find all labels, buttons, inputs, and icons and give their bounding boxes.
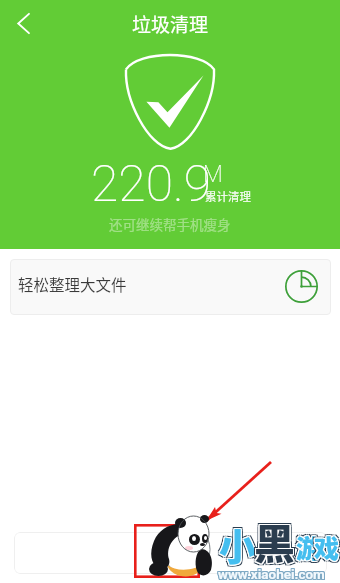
staticText: 游 — [295, 529, 321, 565]
staticText: 小 — [217, 520, 254, 574]
staticText: 戏 — [316, 527, 340, 563]
staticText: 戏 — [313, 530, 339, 566]
staticText: M — [203, 161, 223, 188]
staticText: 黑 — [254, 510, 295, 569]
staticText: www.xiaohei.com — [218, 565, 325, 581]
staticText: 黑 — [256, 509, 297, 568]
staticText: 黑 — [253, 510, 294, 569]
staticText: 小 — [217, 516, 254, 570]
staticText: 小 — [219, 517, 256, 571]
staticText: 黑 — [253, 511, 294, 570]
staticText: www.xiaohei.com — [219, 565, 326, 581]
staticText: 小 — [221, 516, 258, 570]
staticText: www.xiaohei.com — [217, 565, 324, 581]
staticText: 黑 — [256, 511, 297, 570]
staticText: 黑 — [255, 512, 296, 571]
staticText: 累计清理 — [205, 188, 251, 205]
staticText: 小 — [220, 518, 257, 572]
staticText: 戏 — [315, 529, 340, 565]
staticText: 游 — [296, 527, 322, 563]
staticText: 游 — [294, 529, 320, 565]
staticText: www.xiaohei.com — [217, 566, 324, 582]
staticText: 游 — [296, 531, 322, 567]
staticText: 小 — [219, 519, 256, 573]
staticText: 游 — [298, 527, 324, 563]
staticText: 戏 — [314, 527, 340, 563]
staticText: 小 — [221, 518, 258, 572]
staticText: 小 — [219, 520, 256, 574]
staticText: 小 — [220, 517, 257, 571]
staticText: 戏 — [315, 528, 340, 564]
staticText: 戏 — [312, 527, 338, 563]
staticText: 220.9 — [91, 155, 212, 214]
button[interactable]: 轻松整理大文件 — [10, 259, 331, 315]
staticText: 游 — [298, 531, 324, 567]
staticText: 戏 — [312, 529, 338, 565]
staticText: 完成 — [154, 541, 188, 566]
staticText: 游 — [295, 528, 321, 564]
staticText: 游 — [295, 530, 321, 566]
staticText: 戏 — [312, 531, 338, 567]
button[interactable]: 完成 — [14, 532, 327, 574]
staticText: 游 — [296, 528, 322, 564]
staticText: 黑 — [254, 513, 295, 572]
staticText: www.xiaohei.com — [218, 566, 325, 582]
staticText: 小 — [219, 518, 256, 572]
staticText: www.xiaohei.com — [218, 567, 325, 583]
staticText: 黑 — [252, 509, 293, 568]
staticText: 黑 — [252, 513, 293, 572]
staticText: 还可继续帮手机瘦身 — [109, 214, 231, 234]
staticText: 黑 — [255, 511, 296, 570]
staticText: 小 — [221, 520, 258, 574]
staticText: 游 — [298, 529, 324, 565]
staticText: 小 — [217, 518, 254, 572]
staticText: 垃圾清理 — [132, 10, 209, 38]
staticText: 黑 — [254, 511, 295, 570]
staticText: 黑 — [254, 512, 295, 571]
staticText: 游 — [294, 527, 320, 563]
staticText: 戏 — [314, 531, 340, 567]
staticText: 小 — [218, 518, 255, 572]
staticText: 小 — [218, 517, 255, 571]
staticText: www.xiaohei.com — [217, 567, 324, 583]
staticText: 戏 — [313, 529, 339, 565]
staticText: 戏 — [315, 530, 340, 566]
staticText: 黑 — [256, 513, 297, 572]
staticText: www.xiaohei.com — [219, 567, 326, 583]
staticText: 小 — [218, 519, 255, 573]
staticText: 黑 — [255, 510, 296, 569]
staticText: 游 — [297, 530, 323, 566]
staticText: 戏 — [313, 528, 339, 564]
staticText: www.xiaohei.com — [219, 566, 326, 582]
staticText: 小 — [220, 519, 257, 573]
staticText: 戏 — [314, 530, 340, 566]
staticText: 游 — [296, 530, 322, 566]
button[interactable]: Back — [5, 5, 41, 41]
staticText: 黑 — [253, 512, 294, 571]
staticText: 黑 — [254, 509, 295, 568]
staticText: 戏 — [314, 529, 340, 565]
staticText: 游 — [297, 528, 323, 564]
staticText: 小 — [219, 516, 256, 570]
staticText: 游 — [294, 531, 320, 567]
staticText: 戏 — [316, 531, 340, 567]
staticText: 游 — [296, 529, 322, 565]
staticText: 轻松整理大文件 — [18, 273, 127, 295]
staticText: 游 — [297, 529, 323, 565]
staticText: 戏 — [316, 529, 340, 565]
staticText: 黑 — [252, 511, 293, 570]
staticText: 戏 — [314, 528, 340, 564]
